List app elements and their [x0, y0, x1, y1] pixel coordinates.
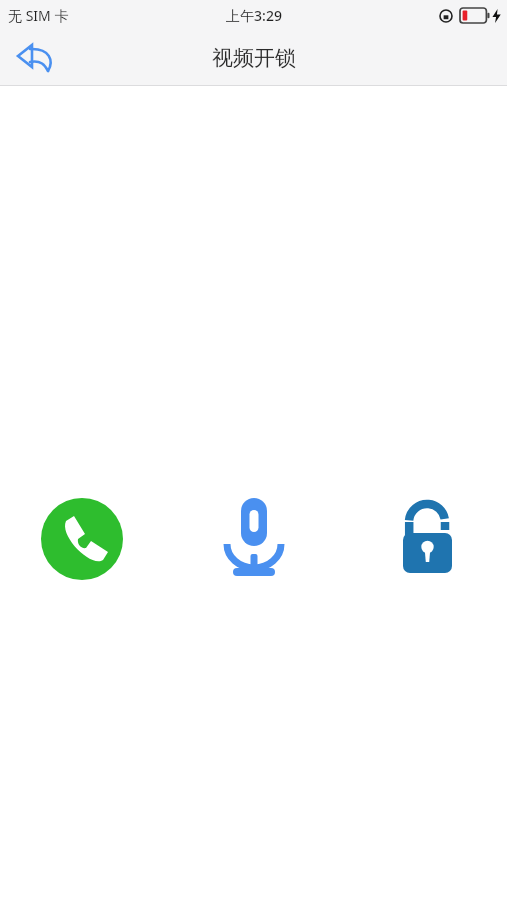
staticText: 上午3:29	[226, 6, 282, 25]
button[interactable]: Back	[10, 35, 62, 81]
button[interactable]: Unlock	[399, 500, 456, 576]
button[interactable]: Microphone	[222, 494, 286, 580]
staticText: 视频开锁	[212, 45, 296, 71]
staticText: 无 SIM 卡	[8, 6, 69, 25]
button[interactable]: Answer call	[41, 498, 123, 580]
